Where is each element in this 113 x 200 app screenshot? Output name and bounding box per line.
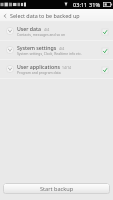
button[interactable]: Expand User applications [0, 60, 113, 78]
staticText: 4/4 [59, 46, 65, 51]
staticText: User applications [17, 63, 60, 70]
other: Expand User data [6, 27, 14, 35]
staticText: Program and program data [17, 70, 61, 75]
staticText: 31% [89, 1, 101, 9]
staticText: Start backup [40, 185, 74, 193]
button[interactable]: Toggle User applications [99, 64, 110, 75]
staticText: System settings, Clock, Realtime info et… [17, 51, 82, 56]
button[interactable]: Back [0, 9, 113, 22]
other: Expand System settings [6, 46, 14, 54]
staticText: User data [17, 25, 42, 32]
other: Expand User applications [6, 65, 14, 73]
staticText: Select data to be backed up [10, 12, 80, 19]
staticText: Contacts, messages and so on [17, 32, 66, 37]
staticText: 14/14 [62, 65, 72, 70]
other: Back [3, 14, 7, 18]
button[interactable]: Toggle User data [99, 26, 110, 37]
staticText: 03:11 [73, 1, 88, 9]
staticText: System settings [17, 44, 57, 51]
staticText: 4/4 [44, 27, 50, 32]
button[interactable]: Expand System settings [0, 41, 113, 59]
button[interactable]: Start backup [3, 183, 110, 194]
button[interactable]: Toggle System settings [99, 45, 110, 56]
button[interactable]: Expand User data [0, 22, 113, 40]
